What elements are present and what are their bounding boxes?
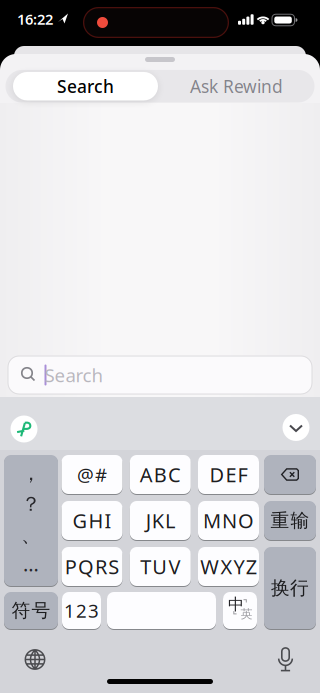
button[interactable]: Delete [264, 455, 316, 494]
button[interactable]: Switch Chinese/English [223, 592, 257, 629]
staticText: @# [77, 462, 107, 487]
button[interactable]: Ask Rewind [166, 70, 306, 102]
staticText: ABC [140, 461, 181, 488]
button[interactable]: Space [107, 592, 216, 629]
staticText: JKL [146, 507, 175, 534]
button[interactable]: Input method [10, 415, 37, 442]
staticText: Search [44, 363, 103, 387]
staticText: 英 [240, 607, 252, 621]
button[interactable]: MNO [198, 501, 259, 540]
staticText: ？ [21, 492, 41, 516]
button[interactable]: 符号 [4, 592, 58, 629]
staticText: 重输 [270, 509, 310, 532]
button[interactable]: @# [61, 455, 122, 494]
button[interactable]: ？ [4, 488, 58, 521]
button[interactable]: PQRS [61, 547, 122, 586]
button[interactable]: 换行 [264, 547, 316, 629]
staticText: 符号 [11, 599, 51, 622]
button[interactable]: ， [4, 455, 58, 488]
button[interactable]: ABC [130, 455, 191, 494]
button[interactable]: 123 [62, 592, 101, 629]
staticText: 中 [228, 595, 244, 614]
staticText: 、 [21, 523, 41, 547]
staticText: PQRS [65, 553, 119, 580]
button[interactable]: TUV [130, 547, 191, 586]
staticText: 123 [64, 598, 99, 623]
button[interactable]: DEF [198, 455, 259, 494]
staticText: … [23, 550, 39, 577]
button[interactable]: GHI [61, 501, 122, 540]
staticText: WXYZ [200, 553, 257, 580]
button[interactable]: Dismiss keyboard [282, 414, 309, 441]
button[interactable]: Search [8, 356, 312, 394]
staticText: Ask Rewind [190, 75, 283, 98]
button[interactable]: 、 [4, 520, 58, 553]
staticText: 换行 [271, 576, 309, 599]
button[interactable]: Dictation [274, 647, 296, 673]
staticText: Search [57, 75, 114, 98]
staticText: TUV [140, 553, 180, 580]
button[interactable]: JKL [130, 501, 191, 540]
staticText: DEF [209, 461, 248, 488]
button[interactable]: Search [13, 72, 158, 100]
staticText: MNO [203, 507, 254, 534]
button[interactable]: Next keyboard [23, 647, 47, 671]
button[interactable]: 重输 [264, 501, 316, 540]
staticText: 16:22 [17, 9, 53, 29]
button[interactable]: … [4, 553, 58, 586]
staticText: GHI [72, 507, 112, 534]
button[interactable]: WXYZ [198, 547, 259, 586]
staticText: ， [21, 461, 41, 486]
